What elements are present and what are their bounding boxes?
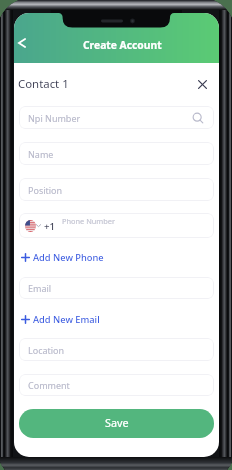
button[interactable]: Close: [193, 75, 211, 93]
staticText: +1: [44, 220, 55, 233]
staticText: Contact 1: [18, 76, 69, 92]
button[interactable]: +1: [19, 213, 214, 238]
button[interactable]: Email: [19, 277, 214, 299]
staticText: Email: [28, 282, 52, 294]
staticText: Add New Phone: [33, 251, 104, 264]
button[interactable]: Position: [19, 178, 214, 201]
button[interactable]: Comment: [19, 374, 214, 396]
staticText: Npi Number: [28, 112, 81, 124]
button[interactable]: Back: [14, 31, 33, 54]
staticText: Comment: [28, 379, 70, 391]
staticText: Save: [105, 415, 129, 430]
staticText: Location: [28, 344, 65, 356]
staticText: Add New Email: [33, 313, 100, 326]
staticText: Position: [28, 184, 63, 196]
button[interactable]: Add New Email: [18, 312, 118, 326]
staticText: Phone Number: [62, 216, 116, 226]
button[interactable]: Save: [19, 409, 214, 438]
button[interactable]: Npi Number: [19, 106, 214, 129]
button[interactable]: Location: [19, 338, 214, 361]
staticText: Create Account: [83, 38, 162, 52]
button[interactable]: Add New Phone: [18, 250, 118, 264]
button[interactable]: Contact 1: [14, 72, 103, 96]
button[interactable]: Name: [19, 142, 214, 165]
staticText: Name: [28, 148, 54, 160]
